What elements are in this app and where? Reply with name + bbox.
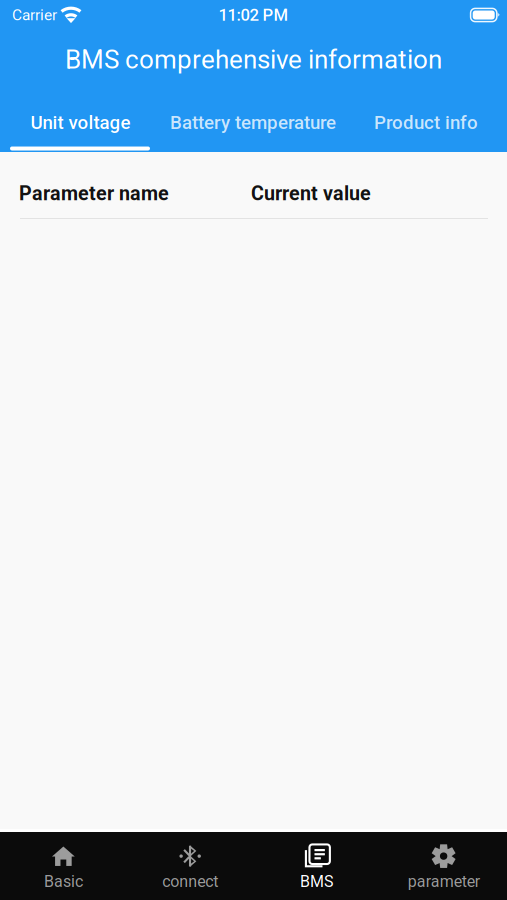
- staticText: Product info: [374, 111, 478, 133]
- button[interactable]: connect: [127, 832, 254, 900]
- staticText: Unit voltage: [30, 111, 130, 133]
- staticText: 11:02 PM: [218, 5, 288, 25]
- staticText: Basic: [44, 872, 83, 891]
- button[interactable]: Basic: [0, 832, 127, 900]
- staticText: Parameter name: [19, 182, 169, 205]
- staticText: Battery temperature: [170, 111, 336, 133]
- staticText: BMS comprehensive information: [65, 44, 442, 75]
- staticText: BMS: [300, 872, 334, 891]
- button[interactable]: Unit voltage: [0, 100, 161, 145]
- button[interactable]: parameter: [380, 832, 507, 900]
- staticText: connect: [162, 872, 218, 891]
- staticText: parameter: [408, 872, 480, 891]
- button[interactable]: BMS: [253, 832, 380, 900]
- staticText: Current value: [251, 182, 371, 205]
- button[interactable]: Product info: [345, 100, 507, 145]
- button[interactable]: Battery temperature: [161, 100, 345, 145]
- staticText: Carrier: [12, 6, 57, 24]
